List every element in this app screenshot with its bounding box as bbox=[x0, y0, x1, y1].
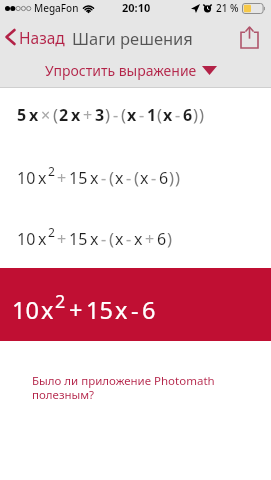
staticText: Шаги решения bbox=[72, 27, 193, 49]
staticText: 15 bbox=[69, 228, 88, 250]
staticText: 6 bbox=[142, 294, 156, 326]
staticText: ) bbox=[175, 166, 181, 189]
staticText: 2 bbox=[48, 163, 55, 180]
staticText: × bbox=[41, 104, 51, 126]
staticText: ( bbox=[134, 166, 140, 189]
staticText: - bbox=[151, 167, 157, 189]
staticText: 10 bbox=[12, 294, 39, 326]
staticText: x bbox=[134, 228, 143, 250]
staticText: 20:10 bbox=[122, 0, 151, 15]
staticText: - bbox=[113, 104, 119, 126]
staticText: 6 bbox=[183, 104, 193, 126]
staticText: 1 bbox=[147, 104, 157, 126]
staticText: 6 bbox=[159, 167, 169, 189]
staticText: 21 % bbox=[216, 1, 239, 15]
staticText: x bbox=[115, 167, 124, 189]
staticText: - bbox=[126, 228, 132, 250]
staticText: ) bbox=[169, 166, 175, 189]
staticText: ( bbox=[109, 166, 115, 189]
staticText: x bbox=[127, 104, 137, 126]
staticText: - bbox=[131, 294, 139, 326]
staticText: 15 bbox=[69, 167, 88, 189]
staticText: x bbox=[115, 228, 124, 250]
staticText: MegaFon bbox=[34, 1, 79, 15]
staticText: ( bbox=[53, 103, 59, 126]
staticText: 10 bbox=[17, 167, 36, 189]
staticText: + bbox=[145, 228, 155, 250]
staticText: - bbox=[101, 167, 107, 189]
staticText: x bbox=[41, 294, 54, 326]
staticText: Назад bbox=[19, 27, 65, 48]
staticText: + bbox=[57, 167, 67, 189]
button[interactable]: 5 bbox=[0, 83, 271, 145]
button[interactable]: Share bbox=[234, 23, 264, 51]
button[interactable]: Упростить выражение bbox=[41, 57, 221, 84]
staticText: x bbox=[163, 104, 173, 126]
staticText: 10 bbox=[17, 228, 36, 250]
staticText: 15 bbox=[86, 294, 113, 326]
staticText: ) bbox=[199, 103, 205, 126]
staticText: + bbox=[83, 104, 93, 126]
staticText: x bbox=[115, 294, 128, 326]
staticText: + bbox=[69, 294, 83, 326]
staticText: Упростить выражение bbox=[45, 61, 197, 80]
staticText: x bbox=[29, 104, 39, 126]
staticText: 2 bbox=[48, 224, 55, 241]
staticText: ) bbox=[105, 103, 111, 126]
staticText: - bbox=[139, 104, 145, 126]
staticText: x bbox=[38, 167, 47, 189]
staticText: 2 bbox=[59, 104, 69, 126]
staticText: x bbox=[90, 228, 99, 250]
button[interactable]: 10 bbox=[0, 146, 271, 208]
button[interactable]: 10 bbox=[0, 268, 271, 341]
staticText: 6 bbox=[157, 228, 167, 250]
staticText: x bbox=[140, 167, 149, 189]
staticText: ( bbox=[121, 103, 127, 126]
staticText: x bbox=[38, 228, 47, 250]
staticText: ( bbox=[157, 103, 163, 126]
staticText: 5 bbox=[17, 104, 27, 126]
staticText: + bbox=[57, 228, 67, 250]
button[interactable]: Назад bbox=[2, 24, 68, 50]
staticText: x bbox=[71, 104, 81, 126]
staticText: ( bbox=[109, 227, 115, 250]
staticText: 2 bbox=[55, 289, 66, 313]
button[interactable]: 10 bbox=[0, 211, 271, 266]
staticText: x bbox=[90, 167, 99, 189]
staticText: - bbox=[101, 228, 107, 250]
staticText: - bbox=[126, 167, 132, 189]
staticText: Было ли приложение Photomath полезным? bbox=[32, 373, 247, 402]
staticText: ) bbox=[193, 103, 199, 126]
staticText: ) bbox=[167, 227, 173, 250]
staticText: - bbox=[175, 104, 181, 126]
staticText: 3 bbox=[95, 104, 105, 126]
